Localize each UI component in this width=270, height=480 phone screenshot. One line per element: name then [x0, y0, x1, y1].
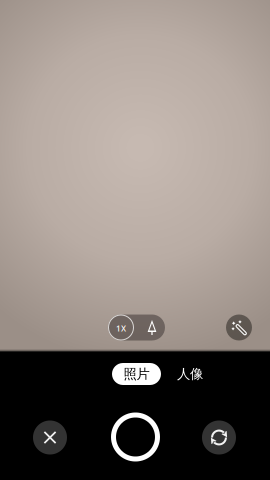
button[interactable]: 照片	[112, 363, 161, 385]
staticText: 照片	[123, 366, 149, 382]
staticText: 人像	[177, 366, 203, 382]
button[interactable]: Switch camera	[202, 420, 236, 454]
staticText: 1X	[116, 323, 126, 334]
button[interactable]: Auto enhance	[226, 314, 252, 340]
button[interactable]: 人像	[164, 363, 216, 385]
button[interactable]: Close	[33, 420, 67, 454]
button[interactable]: Shutter	[106, 408, 164, 466]
button[interactable]: 1X	[108, 314, 134, 340]
button[interactable]: Flash	[134, 316, 165, 339]
